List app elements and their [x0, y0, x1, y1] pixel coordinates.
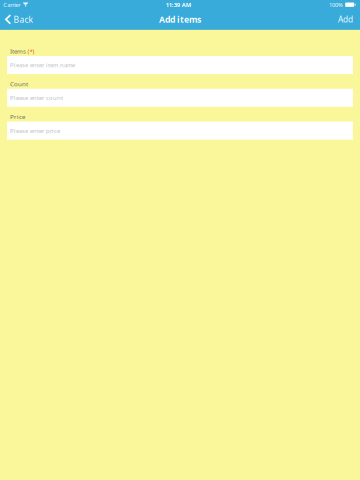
staticText: Price: [10, 112, 25, 121]
staticText: 11:39 AM: [166, 1, 192, 9]
button[interactable]: Add: [331, 9, 360, 29]
staticText: 100%: [329, 1, 343, 9]
staticText: Please enter count: [10, 94, 63, 102]
staticText: Please enter price: [10, 127, 60, 135]
staticText: Carrier: [3, 1, 20, 9]
staticText: Please enter item name: [10, 61, 75, 69]
staticText: Add items: [159, 13, 201, 25]
button[interactable]: Please enter count: [7, 89, 353, 107]
button[interactable]: Please enter price: [7, 122, 353, 140]
staticText: Add: [338, 14, 353, 25]
button[interactable]: Back: [0, 9, 38, 29]
button[interactable]: Please enter item name: [7, 56, 353, 74]
staticText: Back: [13, 14, 33, 25]
staticText: Count: [10, 80, 28, 88]
staticText: (*): [28, 47, 35, 55]
staticText: Items: [10, 47, 26, 55]
